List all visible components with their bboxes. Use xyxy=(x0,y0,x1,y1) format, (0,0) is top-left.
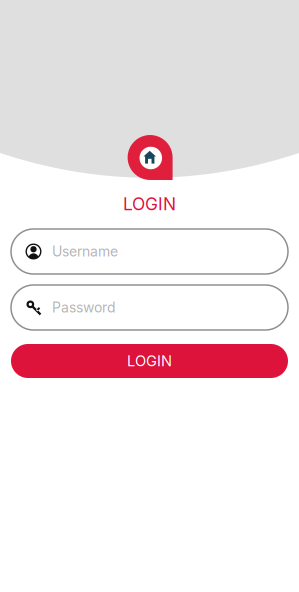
staticText: LOGIN xyxy=(127,352,172,370)
staticText: LOGIN xyxy=(123,193,176,214)
staticText: Password xyxy=(52,299,116,316)
button[interactable]: LOGIN xyxy=(11,344,288,378)
staticText: Username xyxy=(52,243,118,260)
